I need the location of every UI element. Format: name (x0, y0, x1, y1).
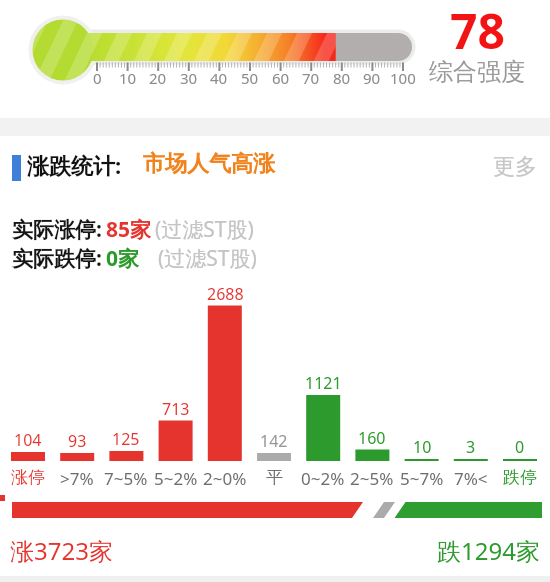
staticText: 7%< (454, 467, 488, 490)
staticText: 30 (180, 68, 198, 88)
staticText: 160 (358, 427, 386, 449)
staticText: 5~2% (154, 467, 198, 490)
staticText: 0 (515, 436, 525, 458)
staticText: 2~0% (203, 467, 247, 490)
staticText: 实际涨停: (12, 215, 102, 244)
staticText: 跌1294家 (437, 534, 540, 567)
staticText: 0~2% (301, 467, 345, 490)
staticText: 更多 (493, 153, 537, 181)
staticText: 7~5% (104, 467, 148, 490)
staticText: 85家 (106, 215, 152, 244)
staticText: 0家 (106, 244, 140, 273)
staticText: 市场人气高涨 (143, 150, 275, 178)
button[interactable] (0, 145, 480, 185)
staticText: 93 (68, 430, 87, 452)
staticText: 104 (14, 429, 42, 451)
staticText: 平 (266, 467, 283, 488)
staticText: 142 (260, 430, 288, 452)
staticText: 跌停 (503, 467, 537, 488)
staticText: 20 (149, 68, 167, 88)
staticText: 50 (241, 68, 259, 88)
staticText: 60 (272, 68, 290, 88)
staticText: >7% (60, 467, 94, 490)
staticText: 5~7% (400, 467, 444, 490)
staticText: 713 (162, 398, 190, 420)
staticText: 0 (93, 68, 102, 88)
staticText: 综合强度 (429, 57, 525, 87)
staticText: 125 (112, 428, 140, 450)
staticText: 90 (363, 68, 381, 88)
staticText: 实际跌停: (12, 244, 102, 273)
staticText: 2~5% (350, 467, 394, 490)
staticText: 80 (333, 68, 351, 88)
staticText: 涨停 (11, 467, 45, 488)
staticText: 涨3723家 (10, 534, 113, 567)
staticText: 78 (450, 0, 505, 63)
staticText: 70 (302, 68, 320, 88)
staticText: 3 (466, 436, 476, 458)
staticText: 1121 (305, 372, 342, 394)
staticText: 10 (413, 436, 432, 458)
staticText: (过滤ST股) (155, 215, 254, 244)
staticText: 10 (119, 68, 137, 88)
button[interactable]: 更多 (480, 147, 550, 187)
staticText: 40 (210, 68, 228, 88)
staticText: 2688 (207, 283, 244, 305)
staticText: 涨跌统计: (27, 150, 122, 180)
staticText: 100 (390, 68, 416, 88)
staticText: (过滤ST股) (158, 244, 257, 273)
